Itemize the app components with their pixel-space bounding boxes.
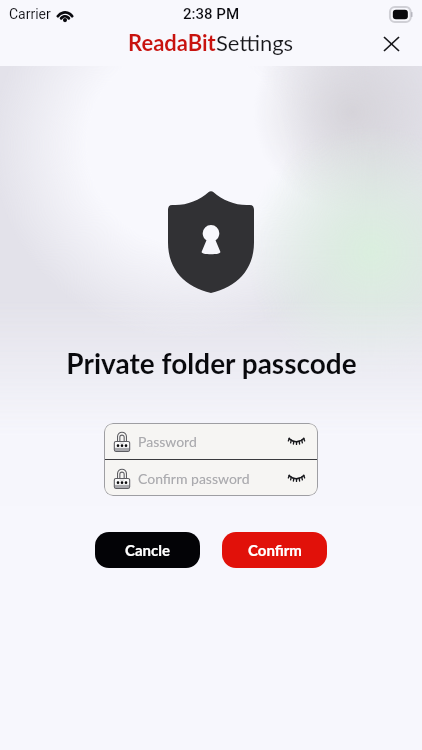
staticText: ReadaBit — [128, 29, 216, 55]
button[interactable]: Close — [375, 30, 407, 62]
button[interactable]: Cancle — [95, 532, 200, 568]
staticText: Confirm — [248, 541, 302, 559]
staticText: Confirm password — [138, 470, 250, 487]
button[interactable]: Password — [104, 423, 318, 459]
staticText: 2:38 PM — [183, 5, 240, 23]
staticText: Private folder passcode — [66, 346, 357, 380]
staticText: Settings — [216, 29, 294, 55]
button[interactable]: Show password — [285, 466, 307, 490]
button[interactable]: Show password — [285, 429, 307, 453]
staticText: Password — [138, 433, 197, 450]
button[interactable]: Confirm — [222, 532, 327, 568]
staticText: Carrier — [9, 6, 51, 22]
button[interactable]: Confirm password — [104, 460, 318, 496]
staticText: Cancle — [125, 541, 170, 559]
